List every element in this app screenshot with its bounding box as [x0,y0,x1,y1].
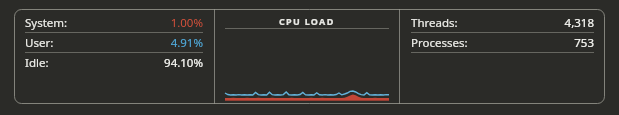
staticText: Threads: [411,15,564,31]
button[interactable]: Processes: [411,33,594,53]
staticText: 1.00% [170,15,203,31]
button[interactable]: User: [25,33,203,53]
button[interactable]: Idle: [25,53,203,72]
staticText: 4,318 [564,15,594,31]
staticText: 94.10% [164,55,203,71]
staticText: 4.91% [170,35,203,51]
button[interactable]: CPU load graph [225,81,389,101]
staticText: Idle: [25,55,164,71]
button[interactable]: Threads: [411,13,594,33]
staticText: User: [25,35,170,51]
staticText: 753 [574,35,594,51]
button[interactable]: System: [25,13,203,33]
staticText: CPU LOAD [279,15,335,27]
staticText: Processes: [411,35,574,51]
staticText: System: [25,15,170,31]
